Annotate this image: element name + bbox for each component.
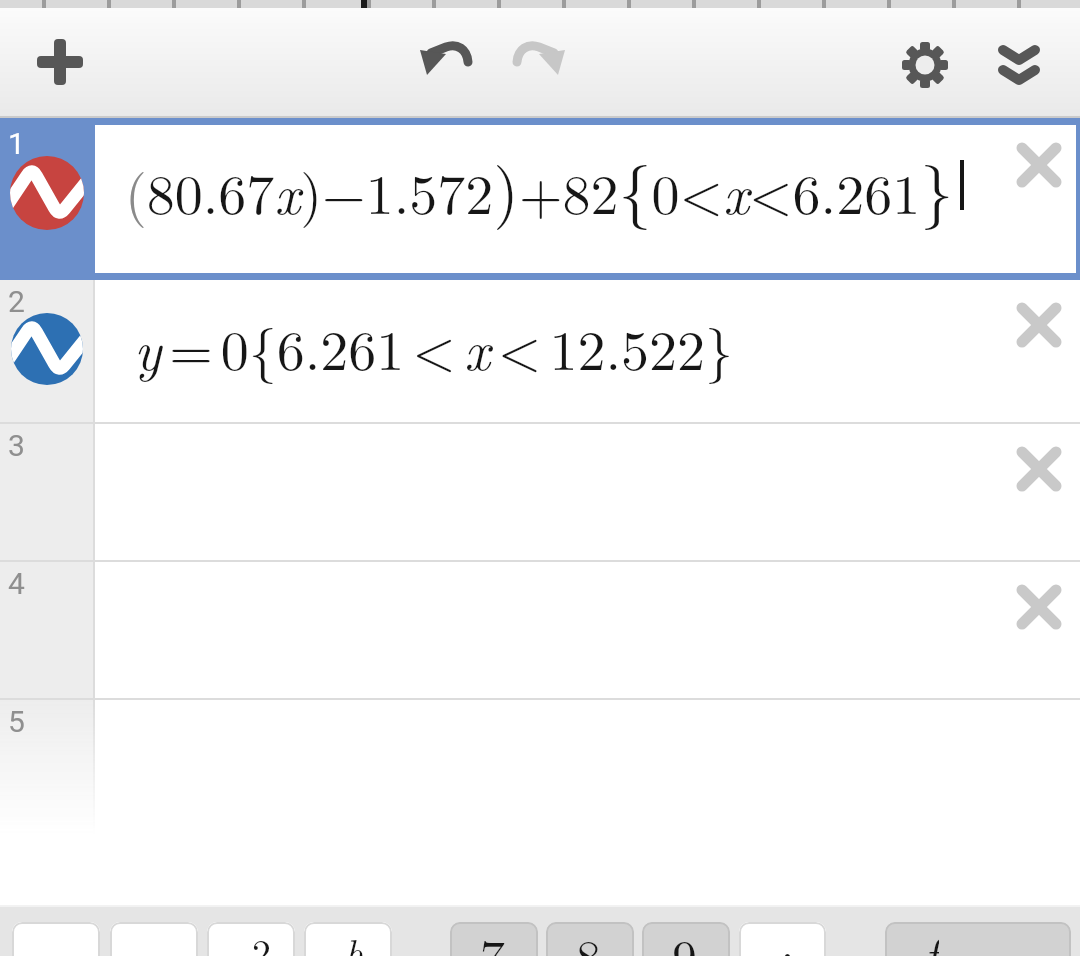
staticText: y = 0{6.261 < x < 12.522} — [134, 307, 733, 386]
button[interactable]: ÷ — [739, 922, 826, 956]
button[interactable]: 2 — [0, 280, 1080, 424]
button[interactable]: (80.67x)−1.572)+82{0<x<6.261} — [95, 125, 1076, 273]
staticText: ÷ — [768, 922, 807, 956]
staticText: f — [923, 922, 939, 956]
staticText: 2 — [252, 923, 272, 956]
staticText: b — [345, 923, 363, 956]
staticText: (80.67x)−1.572)+82{0<x<6.261} — [125, 140, 954, 234]
button[interactable] — [12, 922, 100, 956]
staticText: 3 — [8, 428, 25, 463]
button[interactable] — [1004, 290, 1074, 360]
staticText: 5 — [8, 704, 25, 739]
button[interactable] — [1004, 572, 1074, 642]
button[interactable]: f — [885, 922, 1071, 956]
staticText: 7 — [480, 922, 505, 956]
button[interactable] — [881, 21, 969, 109]
staticText: 9 — [672, 922, 697, 956]
button[interactable] — [110, 922, 198, 956]
button[interactable] — [975, 21, 1063, 109]
button[interactable]: 4 — [0, 562, 1080, 700]
staticText: 8 — [576, 922, 601, 956]
button[interactable]: 2 — [207, 922, 295, 956]
staticText: 2 — [8, 284, 25, 319]
button[interactable]: 5 — [0, 700, 1080, 905]
staticText: 4 — [8, 566, 25, 601]
button[interactable]: 3 — [0, 424, 1080, 562]
staticText: 1 — [8, 126, 25, 161]
button[interactable]: 8 — [546, 922, 634, 956]
button[interactable] — [16, 18, 104, 106]
button[interactable] — [496, 14, 584, 102]
button[interactable]: 7 — [450, 922, 538, 956]
button[interactable] — [401, 14, 489, 102]
button[interactable]: b — [304, 922, 392, 956]
button[interactable]: 9 — [642, 922, 730, 956]
button[interactable] — [1004, 130, 1074, 200]
button[interactable] — [1004, 434, 1074, 504]
